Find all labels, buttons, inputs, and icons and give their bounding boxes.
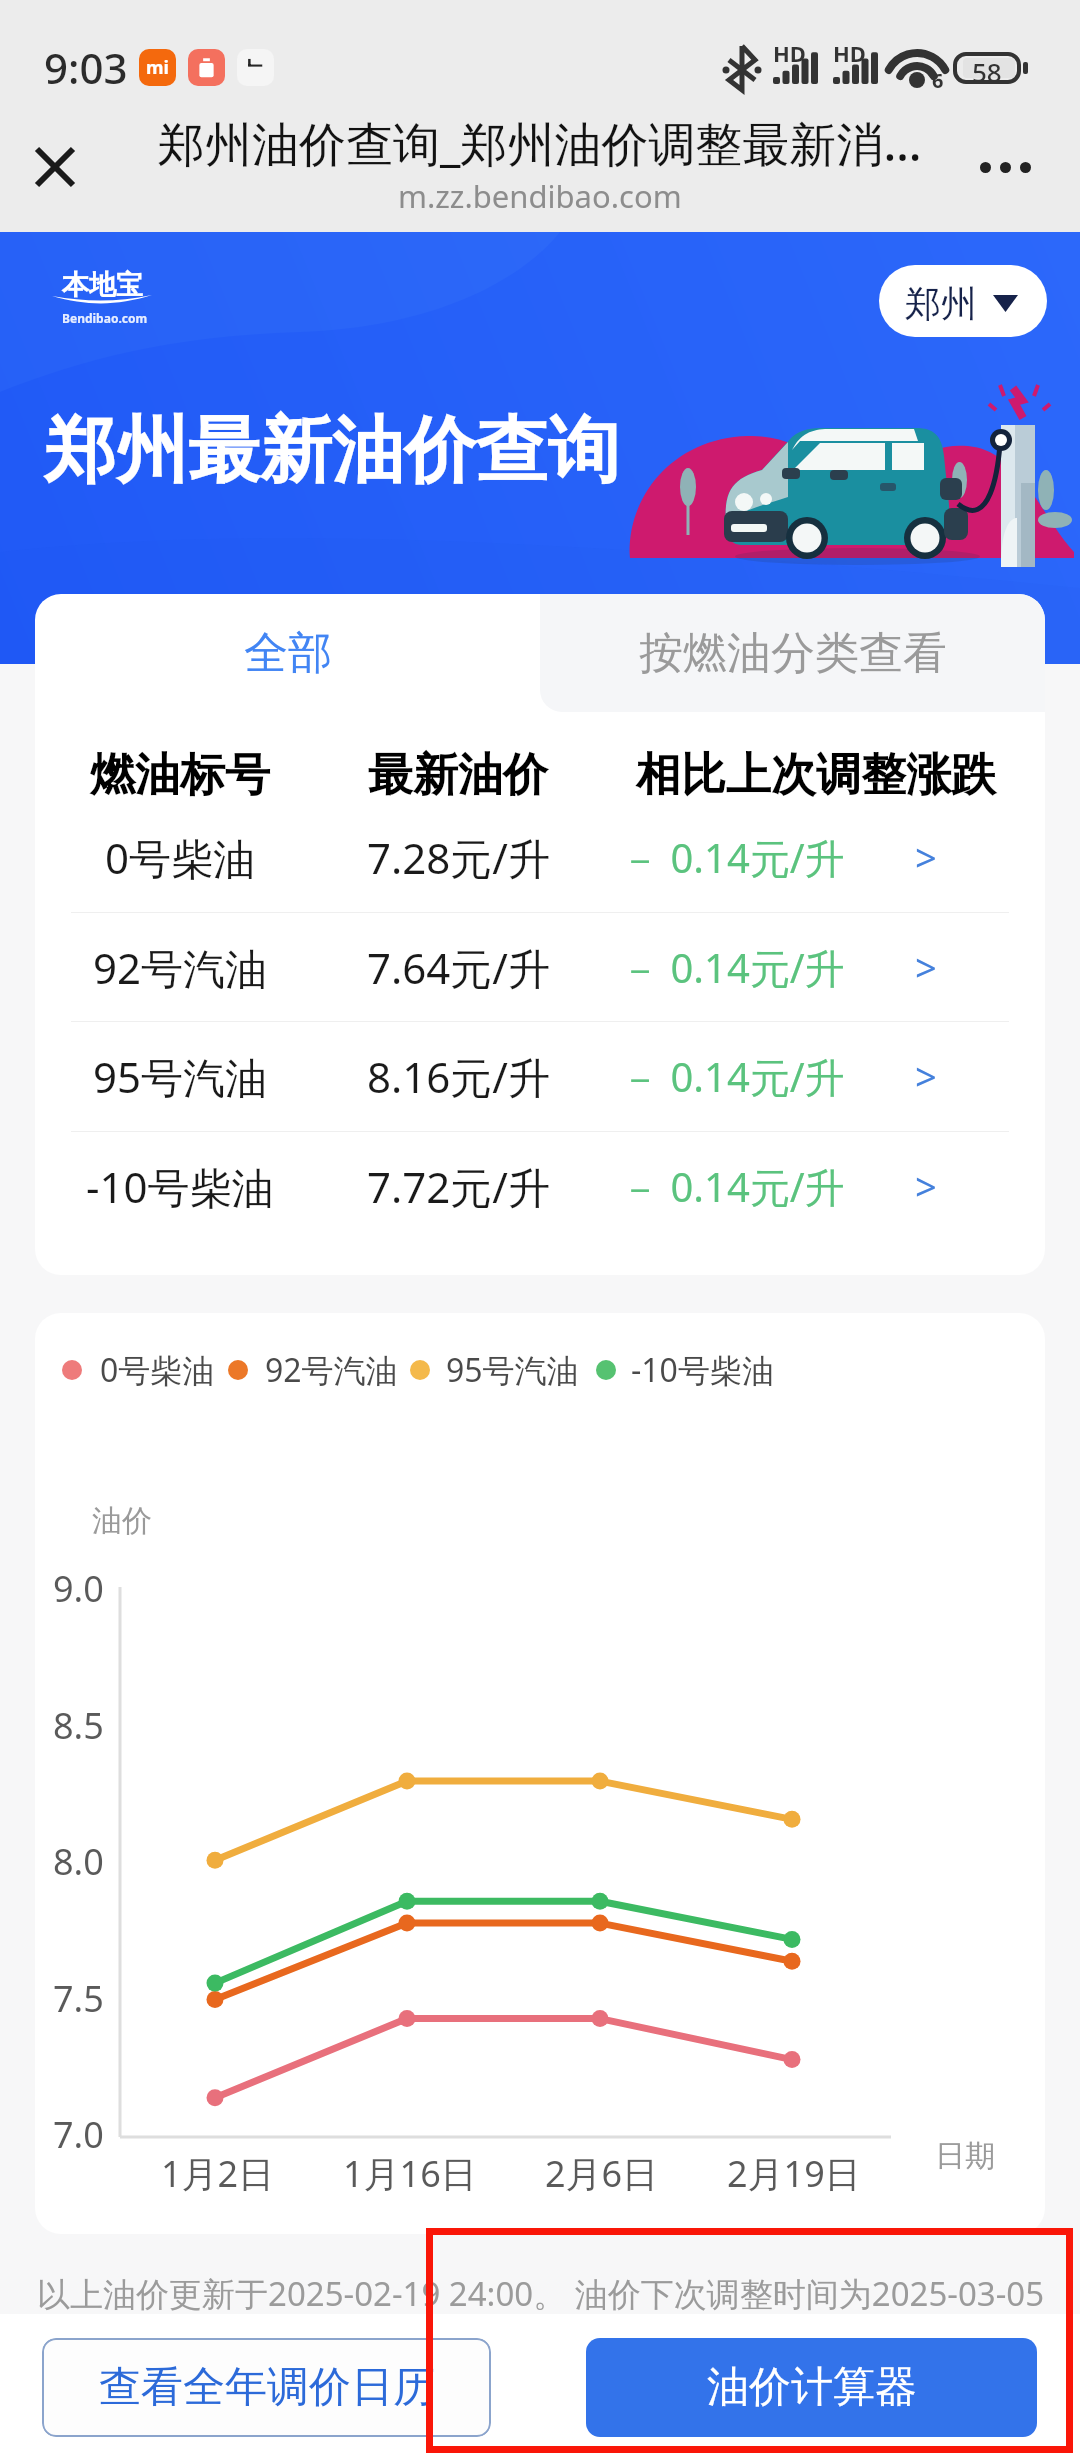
staticText: 按燃油分类查看	[639, 626, 947, 681]
staticText: 7.5	[53, 1974, 104, 2022]
staticText: 最新油价	[368, 747, 548, 804]
staticText: － 0.14元/升	[620, 940, 845, 995]
staticText: 以上油价更新于2025-02-19 24:00。 油价下次调整时间为2025-0…	[37, 2271, 1045, 2316]
button[interactable]: 92号汽油	[35, 912, 1045, 1022]
staticText: 1月16日	[343, 2149, 477, 2198]
staticText: 油价计算器	[707, 2361, 917, 2414]
staticText: HD	[833, 38, 866, 68]
staticText: 郑州	[905, 281, 977, 326]
staticText: － 0.14元/升	[620, 1159, 845, 1214]
staticText: 58	[972, 54, 1002, 82]
button[interactable]: 全部	[35, 594, 540, 712]
staticText: 9.0	[53, 1564, 104, 1612]
button[interactable]: 95号汽油	[35, 1021, 1045, 1131]
staticText: -10号柴油	[86, 1158, 274, 1215]
staticText: 9:03	[44, 39, 128, 96]
staticText: -10号柴油	[631, 1348, 774, 1392]
staticText: 6	[932, 67, 944, 94]
staticText: >	[915, 941, 937, 993]
staticText: 95号汽油	[446, 1348, 579, 1392]
staticText: 相比上次调整涨跌	[636, 747, 996, 804]
staticText: 油价	[92, 1502, 152, 1540]
staticText: 7.64元/升	[367, 939, 550, 996]
staticText: 8.5	[53, 1701, 104, 1749]
staticText: 7.0	[53, 2110, 104, 2158]
staticText: ᄂ	[245, 55, 266, 81]
staticText: 全部	[244, 626, 332, 681]
button[interactable]: 郑州	[879, 265, 1047, 337]
staticText: m.zz.bendibao.com	[398, 175, 682, 215]
staticText: >	[915, 1160, 937, 1212]
button[interactable]: -10号柴油	[35, 1131, 1045, 1241]
staticText: 2月19日	[727, 2149, 861, 2198]
button[interactable]: Close	[19, 131, 91, 203]
staticText: >	[915, 831, 937, 883]
staticText: 8.0	[53, 1837, 104, 1885]
staticText: 7.28元/升	[367, 829, 550, 886]
button[interactable]: 油价计算器	[586, 2338, 1037, 2437]
button[interactable]: 查看全年调价日历	[42, 2338, 491, 2437]
staticText: 8.16元/升	[367, 1048, 550, 1105]
staticText: mi	[146, 55, 169, 80]
staticText: 燃油标号	[90, 747, 270, 804]
staticText: 日期	[935, 2137, 995, 2175]
staticText: 郑州最新油价查询	[44, 406, 620, 497]
staticText: 1月2日	[161, 2149, 275, 2198]
staticText: － 0.14元/升	[620, 1049, 845, 1104]
staticText: 7.72元/升	[367, 1158, 550, 1215]
staticText: 本地宝	[62, 268, 143, 302]
staticText: 郑州油价查询_郑州油价调整最新消…	[158, 111, 922, 171]
staticText: 0号柴油	[105, 829, 256, 886]
staticText: － 0.14元/升	[620, 830, 845, 885]
staticText: 查看全年调价日历	[99, 2361, 435, 2414]
staticText: 92号汽油	[265, 1348, 398, 1392]
button[interactable]: 0号柴油	[35, 802, 1045, 912]
button[interactable]: 按燃油分类查看	[540, 594, 1045, 712]
staticText: Bendibao.com	[62, 310, 148, 326]
button[interactable]: More options	[969, 131, 1041, 203]
staticText: 0号柴油	[100, 1348, 215, 1392]
staticText: >	[915, 1050, 937, 1102]
staticText: 92号汽油	[93, 939, 268, 996]
staticText: HD	[773, 38, 806, 68]
staticText: 95号汽油	[93, 1048, 268, 1105]
staticText: 2月6日	[545, 2149, 659, 2198]
